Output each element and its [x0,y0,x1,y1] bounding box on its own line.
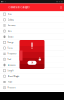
staticText: Pressure [7,86,15,89]
staticText: Cooking [7,19,13,21]
staticText: Force [7,47,12,49]
button[interactable]: Energy [0,40,64,45]
button[interactable]: Force [0,45,64,51]
staticText: Illuminance [7,64,15,66]
button[interactable]: Mass/Weight [0,74,64,79]
staticText: Energy [7,41,13,43]
button[interactable]: Currency [0,23,64,28]
button[interactable]: OK [27,61,36,65]
button[interactable]: Fuel [0,57,64,62]
staticText: Power [7,81,12,83]
staticText: Conversion Category [8,6,29,9]
staticText: Frequency [7,53,16,55]
staticText: Currency [7,24,15,27]
staticText: Fuel [7,58,10,60]
staticText: Area [7,13,11,15]
button[interactable]: Density [0,34,64,40]
button[interactable]: Cooking [0,17,64,23]
button[interactable]: Data [0,28,64,34]
button[interactable]: Length [0,68,64,74]
staticText: OK [31,62,33,64]
button[interactable]: Pressure [0,85,64,91]
button[interactable]: Illuminance [0,62,64,68]
staticText: Length [7,70,13,72]
staticText: Data [7,30,11,32]
staticText: Mass/Weight [7,75,19,77]
button[interactable]: Power [0,79,64,85]
staticText: Density [7,36,13,38]
button[interactable]: Area [0,11,64,17]
button[interactable]: More options [58,3,64,11]
button[interactable]: Frequency [0,51,64,57]
